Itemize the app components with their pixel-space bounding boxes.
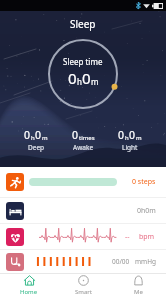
staticText: h bbox=[77, 76, 82, 87]
button[interactable]: 00/00 bbox=[0, 250, 166, 273]
staticText: Sleep bbox=[70, 17, 96, 31]
staticText: Smart bbox=[75, 288, 92, 296]
button[interactable]: -- bbox=[0, 224, 166, 249]
staticText: Home bbox=[20, 288, 38, 296]
staticText: 0h0m bbox=[137, 206, 156, 216]
staticText: Me bbox=[134, 288, 143, 296]
staticText: h bbox=[31, 134, 35, 142]
staticText: 0 bbox=[118, 128, 125, 142]
staticText: 0 bbox=[24, 128, 31, 142]
staticText: mmHg bbox=[135, 257, 156, 266]
staticText: 0 bbox=[68, 68, 77, 88]
staticText: Awake bbox=[73, 143, 94, 152]
button[interactable]: Smart bbox=[57, 274, 109, 296]
button[interactable]: 0h0m bbox=[0, 198, 166, 223]
staticText: times bbox=[79, 134, 95, 142]
staticText: 0 bbox=[129, 128, 136, 142]
staticText: m bbox=[136, 134, 142, 142]
staticText: bpm bbox=[139, 232, 155, 242]
staticText: -- bbox=[125, 232, 130, 242]
staticText: Deep bbox=[28, 143, 45, 152]
staticText: Light bbox=[122, 143, 138, 152]
staticText: h bbox=[125, 134, 129, 142]
button[interactable]: Home bbox=[3, 274, 55, 296]
staticText: Sleep time bbox=[63, 56, 103, 67]
staticText: 0 steps bbox=[132, 177, 156, 187]
staticText: 0 bbox=[72, 128, 79, 142]
staticText: 0 bbox=[35, 128, 42, 142]
staticText: 0 bbox=[82, 68, 91, 88]
button[interactable]: 0 steps bbox=[0, 167, 166, 197]
staticText: m bbox=[91, 76, 99, 87]
staticText: 00/00 bbox=[112, 257, 130, 266]
staticText: m bbox=[42, 134, 48, 142]
button[interactable]: Me bbox=[112, 274, 164, 296]
